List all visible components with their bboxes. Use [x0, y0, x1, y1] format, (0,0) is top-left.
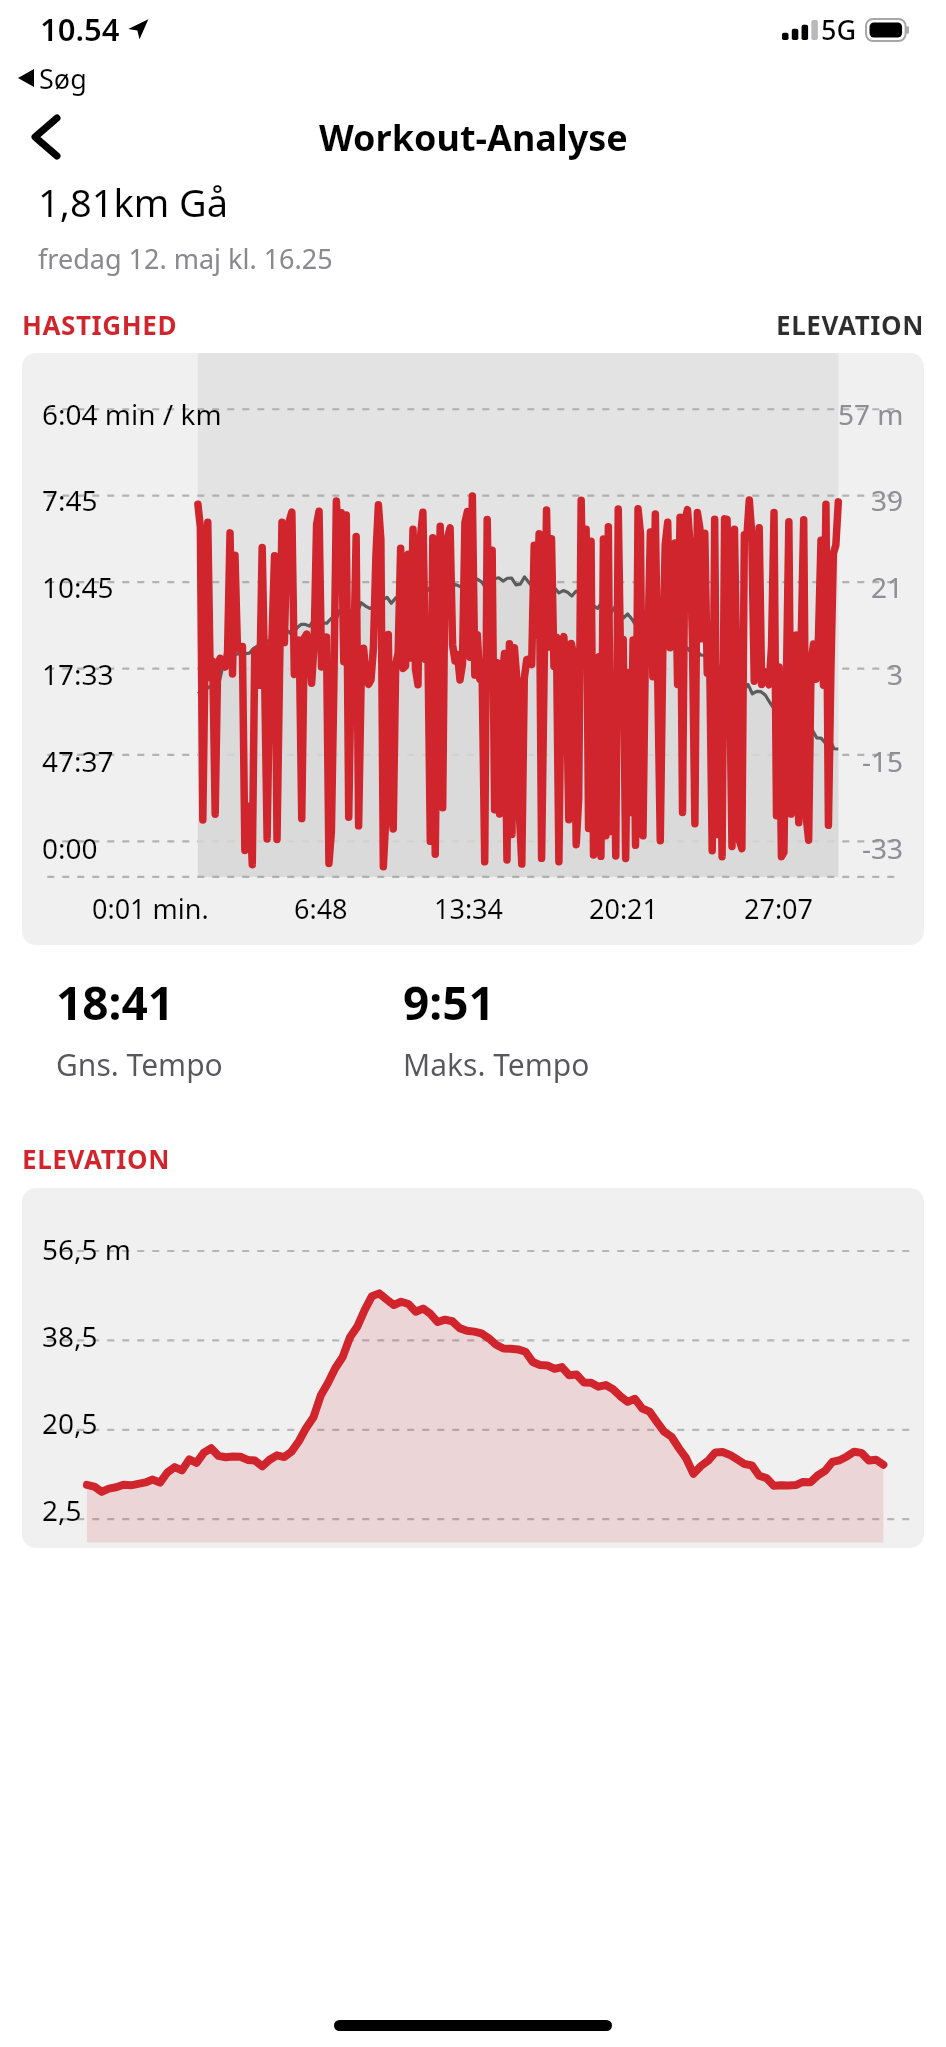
staticText: 27:07 [744, 890, 814, 927]
button[interactable]: 18:41 [56, 971, 223, 1085]
staticText: 9:51 [403, 971, 495, 1034]
staticText: ELEVATION [776, 307, 924, 342]
staticText: fredag 12. maj kl. 16.25 [38, 240, 333, 277]
staticText: 7:45 [42, 481, 98, 519]
staticText: 13:34 [434, 890, 504, 927]
staticText: 21 [871, 568, 904, 606]
staticText: Søg [39, 60, 87, 97]
staticText: 47:37 [42, 742, 114, 780]
staticText: -33 [862, 829, 904, 867]
staticText: 56,5 m [42, 1230, 132, 1268]
staticText: 57 m [838, 395, 904, 433]
staticText: 20,5 [42, 1404, 98, 1442]
staticText: 39 [871, 481, 904, 519]
staticText: 10.54 [40, 8, 120, 50]
button[interactable]: 9:51 [403, 971, 590, 1085]
staticText: 5G [821, 11, 857, 48]
staticText: 38,5 [42, 1317, 98, 1355]
staticText: 6:48 [294, 890, 348, 927]
button[interactable]: 56,5 m [22, 1188, 924, 1548]
staticText: 10:45 [42, 568, 114, 606]
staticText: Workout-Analyse [319, 113, 628, 162]
staticText: HASTIGHED [22, 307, 178, 342]
staticText: 1,81km Gå [38, 176, 229, 228]
staticText: 3 [887, 655, 904, 693]
staticText: 20:21 [589, 890, 659, 927]
button[interactable]: 6:04 min / km [22, 353, 924, 945]
button[interactable]: Back [18, 109, 74, 165]
staticText: 2,5 [42, 1491, 82, 1529]
staticText: ELEVATION [22, 1141, 170, 1176]
staticText: Maks. Tempo [403, 1044, 590, 1085]
staticText: 18:41 [56, 971, 175, 1034]
staticText: Gns. Tempo [56, 1044, 223, 1085]
staticText: -15 [862, 742, 904, 780]
button[interactable]: Søg [18, 58, 87, 98]
staticText: 17:33 [42, 655, 114, 693]
staticText: 0:00 [42, 829, 98, 867]
staticText: 0:01 min. [92, 890, 209, 927]
staticText: 6:04 min / km [42, 395, 222, 433]
